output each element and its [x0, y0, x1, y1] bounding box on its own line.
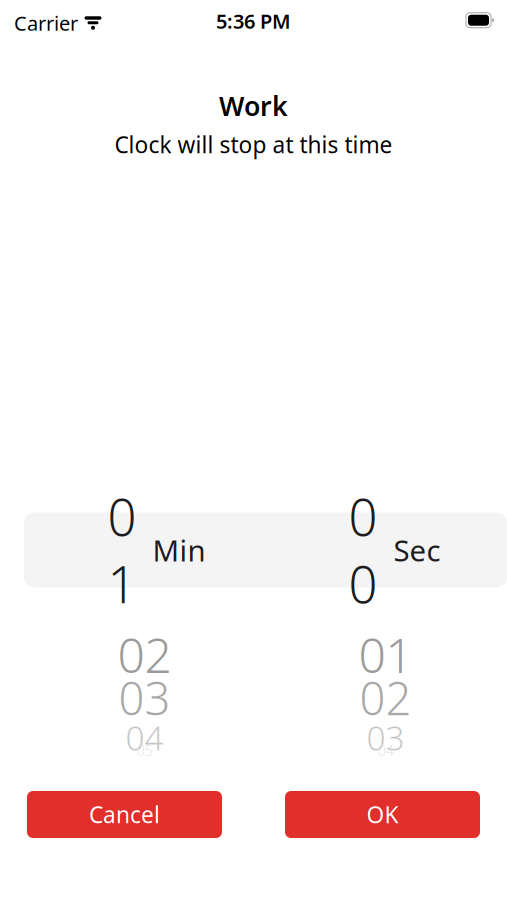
staticText: 02: [117, 622, 171, 686]
staticText: 01: [107, 483, 136, 617]
button[interactable]: OK: [285, 791, 480, 838]
staticText: OK: [366, 799, 398, 829]
staticText: Sec: [393, 530, 440, 569]
staticText: 05: [136, 740, 152, 760]
staticText: 5:36 PM: [216, 8, 291, 34]
staticText: 00: [348, 483, 377, 617]
staticText: 03: [118, 667, 170, 728]
staticText: 04: [377, 740, 393, 760]
button[interactable]: Cancel: [27, 791, 222, 838]
staticText: 01: [358, 622, 412, 686]
staticText: 04: [125, 715, 163, 760]
staticText: 03: [366, 715, 404, 760]
staticText: Work: [219, 88, 288, 123]
staticText: Clock will stop at this time: [114, 129, 392, 159]
staticText: Cancel: [89, 799, 160, 829]
staticText: Carrier: [14, 10, 78, 36]
staticText: Min: [152, 530, 205, 569]
staticText: 02: [359, 667, 411, 728]
